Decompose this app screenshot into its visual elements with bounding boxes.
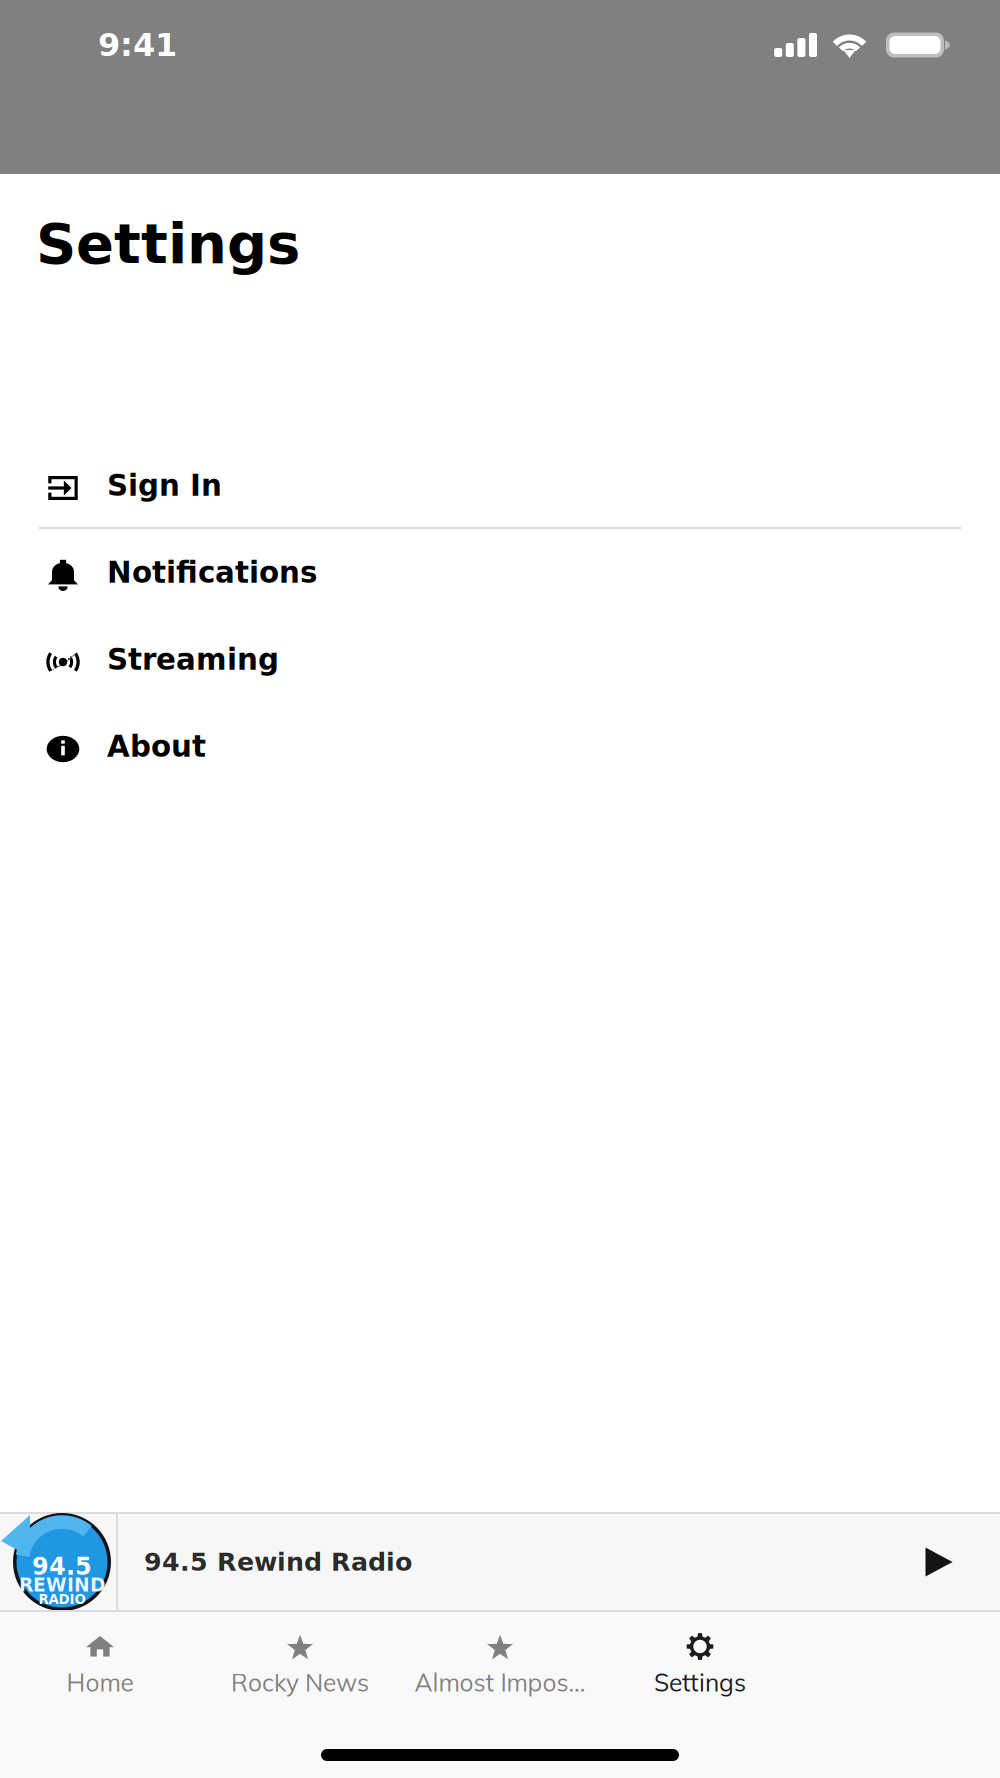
button[interactable]: 94.5 — [0, 1514, 891, 1610]
staticText: 9:41 — [98, 26, 177, 64]
button[interactable]: Streaming — [0, 616, 1000, 703]
staticText: RADIO — [38, 1592, 85, 1607]
staticText: Streaming — [107, 642, 279, 676]
staticText: Settings — [36, 211, 300, 276]
staticText: REWIND — [19, 1574, 105, 1596]
staticText: Almost Impos… — [414, 1667, 585, 1698]
button[interactable]: About — [0, 703, 1000, 790]
button[interactable]: Play — [891, 1514, 1000, 1610]
button[interactable]: Notifications — [0, 529, 1000, 616]
staticText: Notifications — [107, 555, 317, 589]
staticText: Settings — [654, 1667, 746, 1698]
button[interactable]: Settings — [600, 1633, 800, 1699]
button[interactable]: Home — [0, 1633, 200, 1699]
staticText: Rocky News — [231, 1667, 369, 1698]
button[interactable]: Almost Impos… — [400, 1633, 600, 1699]
staticText: About — [107, 729, 206, 763]
staticText: 94.5 Rewind Radio — [144, 1547, 412, 1577]
staticText: Home — [66, 1667, 133, 1698]
staticText: 94.5 — [32, 1552, 92, 1580]
button[interactable]: Rocky News — [200, 1633, 400, 1699]
staticText: Sign In — [107, 468, 222, 502]
button[interactable]: Sign In — [0, 444, 1000, 527]
